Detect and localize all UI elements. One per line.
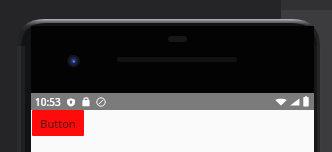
staticText: Button	[40, 116, 76, 131]
button[interactable]: Button	[32, 110, 84, 136]
staticText: 10:53	[35, 95, 61, 109]
